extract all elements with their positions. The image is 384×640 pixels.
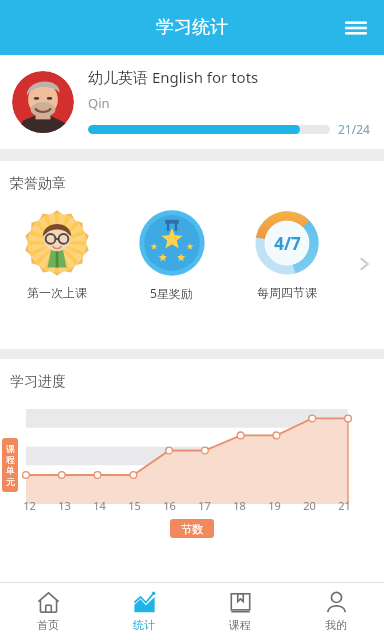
staticText: 19 xyxy=(268,498,281,513)
staticText: 21/24 xyxy=(338,121,370,137)
staticText: 统计 xyxy=(133,618,155,632)
staticText: Qin xyxy=(88,94,110,112)
staticText: 12 xyxy=(23,498,36,513)
button[interactable]: 首页 xyxy=(0,583,96,640)
staticText: 20 xyxy=(303,498,316,513)
staticText: 每周四节课 xyxy=(257,285,317,300)
staticText: 13 xyxy=(58,498,71,513)
staticText: 课 xyxy=(6,443,15,454)
button[interactable]: 第一次上课 xyxy=(0,209,114,300)
button[interactable]: More badges xyxy=(344,209,384,319)
staticText: 单 xyxy=(6,465,15,476)
button[interactable]: 课程 xyxy=(192,583,288,640)
staticText: 程 xyxy=(6,454,15,465)
staticText: 幼儿英语 English for tots xyxy=(88,67,259,87)
staticText: 首页 xyxy=(37,618,59,632)
button[interactable]: 5星奖励 xyxy=(114,209,229,301)
staticText: 学习统计 xyxy=(156,16,228,39)
staticText: 17 xyxy=(198,498,211,513)
staticText: 14 xyxy=(93,498,106,513)
staticText: 16 xyxy=(163,498,176,513)
staticText: 学习进度 xyxy=(10,373,66,391)
button[interactable]: 统计 xyxy=(96,583,192,640)
button[interactable]: 我的 xyxy=(288,583,384,640)
staticText: 5星奖励 xyxy=(150,285,193,301)
staticText: 元 xyxy=(6,476,15,487)
staticText: 荣誉勋章 xyxy=(10,175,66,193)
staticText: 15 xyxy=(128,498,141,513)
staticText: 18 xyxy=(233,498,246,513)
staticText: 课程 xyxy=(229,618,251,632)
staticText: 我的 xyxy=(325,618,347,632)
staticText: 第一次上课 xyxy=(27,285,87,300)
staticText: 21 xyxy=(338,498,351,513)
button[interactable]: Menu xyxy=(334,6,378,50)
staticText: 节数 xyxy=(181,522,203,536)
button[interactable]: 幼儿英语 English for tots xyxy=(0,55,384,149)
staticText: 4/7 xyxy=(274,232,301,255)
button[interactable]: 4/7 xyxy=(229,209,344,300)
